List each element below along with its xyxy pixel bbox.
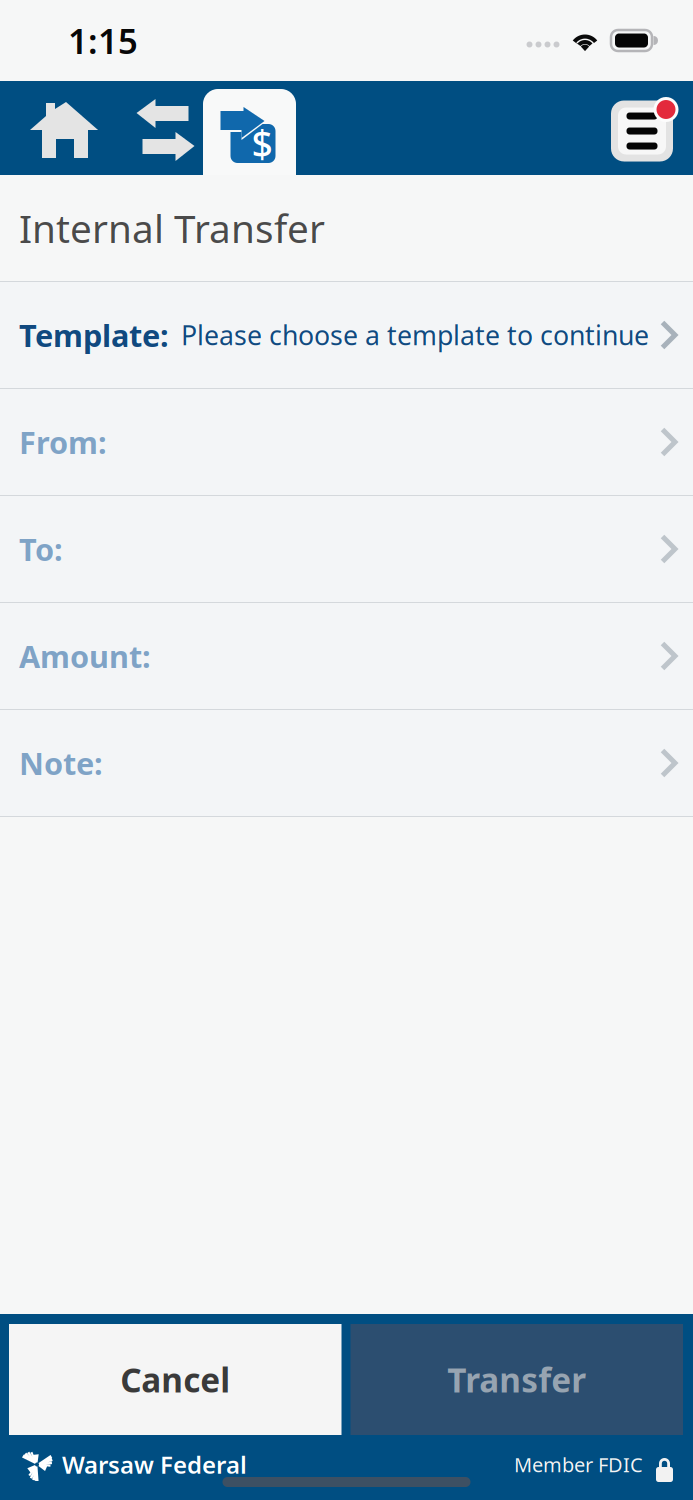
staticText: Cancel xyxy=(120,1357,230,1402)
button[interactable]: Amount: xyxy=(0,603,693,710)
button[interactable]: Home xyxy=(0,81,128,175)
staticText: Transfer xyxy=(447,1357,586,1402)
button[interactable]: Transfer xyxy=(350,1324,683,1435)
button[interactable]: Internal Transfer xyxy=(203,81,296,175)
button[interactable]: Note: xyxy=(0,710,693,817)
staticText: Internal Transfer xyxy=(19,202,325,254)
button[interactable]: Transfers xyxy=(128,81,203,175)
button[interactable]: Template: xyxy=(0,282,693,389)
staticText: Amount: xyxy=(19,636,151,676)
staticText: 1:15 xyxy=(68,17,138,63)
button[interactable]: Menu xyxy=(597,81,693,175)
button[interactable]: Cancel xyxy=(9,1324,341,1435)
button[interactable]: From: xyxy=(0,389,693,496)
button[interactable]: To: xyxy=(0,496,693,603)
staticText: Template: xyxy=(19,315,169,355)
staticText: From: xyxy=(19,422,107,462)
staticText: $ xyxy=(251,119,272,168)
staticText: Member FDIC xyxy=(514,1451,643,1478)
staticText: To: xyxy=(19,529,63,569)
staticText: Note: xyxy=(19,743,103,783)
staticText: Please choose a template to continue xyxy=(181,317,649,353)
staticText: Warsaw Federal xyxy=(62,1449,247,1480)
